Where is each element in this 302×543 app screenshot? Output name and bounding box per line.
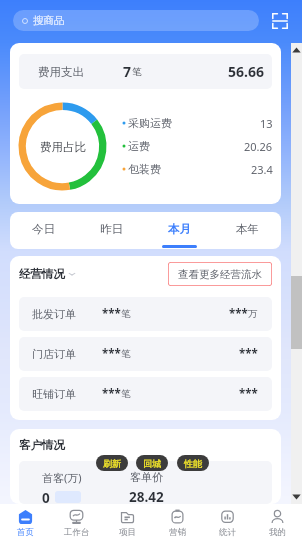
button[interactable]: 搜商品 [13, 10, 259, 31]
staticText: 客户情况 [19, 438, 65, 452]
button[interactable]: 项目 [102, 504, 152, 543]
staticText: 运费 [128, 139, 150, 153]
staticText: 昨日 [100, 222, 123, 236]
staticText: 刷新 [103, 458, 121, 469]
staticText: 本年 [236, 222, 259, 236]
staticText: 首客(万) [42, 470, 82, 485]
staticText: 费用占比 [40, 140, 86, 154]
button[interactable]: 刷新 [96, 455, 128, 471]
staticText: 统计 [219, 527, 236, 538]
staticText: 今日 [32, 222, 55, 236]
staticText: 0 [42, 489, 50, 504]
button[interactable]: 今日 [10, 212, 77, 249]
staticText: 笔 [132, 66, 142, 78]
staticText: 7 [123, 62, 132, 81]
staticText: 我的 [269, 527, 286, 538]
button[interactable]: 我的 [252, 504, 302, 543]
staticText: 工作台 [64, 527, 90, 538]
staticText: 批发订单 [32, 307, 76, 321]
button[interactable]: 性能 [177, 455, 209, 471]
button[interactable]: 昨日 [77, 212, 145, 249]
button[interactable]: 旺铺订单 [19, 377, 272, 411]
staticText: 20.26 [244, 139, 273, 153]
staticText: 笔 [121, 348, 131, 360]
staticText: 包装费 [128, 162, 161, 176]
staticText: *** [102, 346, 121, 362]
staticText: 万 [248, 308, 258, 320]
button[interactable]: 门店订单 [19, 337, 272, 371]
staticText: 项目 [119, 527, 136, 538]
staticText: 采购运费 [128, 116, 172, 130]
staticText: 56.66 [228, 62, 264, 81]
staticText: 本月 [168, 222, 191, 236]
staticText: 旺铺订单 [32, 387, 76, 401]
staticText: 经营情况 [19, 267, 65, 281]
staticText: 笔 [121, 388, 131, 400]
staticText: 性能 [184, 458, 202, 469]
staticText: *** [102, 306, 121, 322]
button[interactable]: 首页 [0, 504, 51, 543]
button[interactable]: 本年 [213, 212, 281, 249]
staticText: *** [229, 306, 248, 322]
button[interactable]: Scan [272, 13, 288, 29]
button[interactable]: 回城 [136, 455, 168, 471]
staticText: 首页 [17, 527, 34, 538]
staticText: 23.4 [251, 162, 273, 176]
staticText: 搜商品 [33, 14, 65, 27]
staticText: 28.42 [129, 488, 164, 504]
staticText: 客单价 [130, 470, 163, 484]
staticText: 13 [260, 116, 273, 130]
button[interactable]: 本月 [145, 212, 213, 249]
staticText: *** [102, 386, 121, 402]
button[interactable]: 查看更多经营流水 [168, 262, 272, 286]
button[interactable]: 批发订单 [19, 297, 272, 331]
staticText: 笔 [121, 308, 131, 320]
button[interactable]: 工作台 [51, 504, 102, 543]
staticText: *** [239, 346, 258, 362]
staticText: 回城 [143, 458, 161, 469]
staticText: 查看更多经营流水 [178, 268, 262, 281]
button[interactable]: 统计 [202, 504, 252, 543]
staticText: 费用支出 [38, 65, 84, 79]
button[interactable]: 营销 [152, 504, 202, 543]
staticText: 门店订单 [32, 347, 76, 361]
staticText: 营销 [169, 527, 186, 538]
staticText: *** [239, 386, 258, 402]
